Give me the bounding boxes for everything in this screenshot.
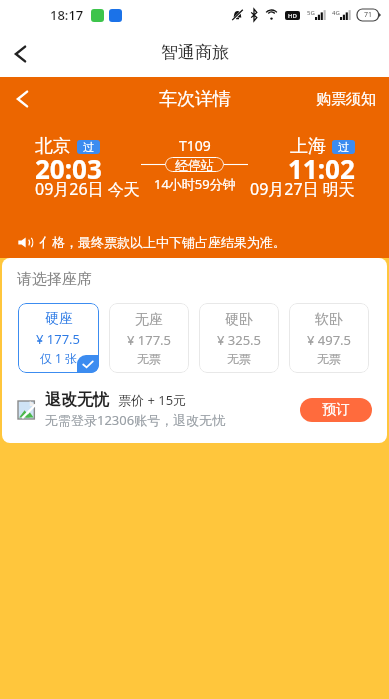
staticText: 请选择座席 [17, 270, 92, 289]
staticText: 18:17 [50, 6, 84, 24]
button[interactable]: 经停站 [165, 157, 224, 172]
staticText: ¥ 325.5 [217, 331, 262, 349]
staticText: 硬卧 [225, 311, 253, 329]
staticText: 退改无忧 [45, 390, 109, 410]
staticText: 无票 [137, 351, 161, 366]
button[interactable]: 软卧 [289, 303, 369, 373]
staticText: HD [288, 12, 297, 20]
button[interactable]: 无座 [109, 303, 189, 373]
button[interactable]: 购票须知 [303, 80, 389, 119]
button[interactable]: Back [0, 77, 44, 121]
staticText: 票价 + 15元 [118, 391, 187, 409]
staticText: 过 [83, 140, 94, 154]
staticText: 4G [332, 9, 340, 17]
staticText: 车次详情 [159, 88, 231, 111]
staticText: ¥ 177.5 [127, 331, 172, 349]
staticText: 无票 [317, 351, 341, 366]
staticText: 经停站 [175, 157, 214, 172]
button[interactable]: 硬卧 [199, 303, 279, 373]
staticText: 09月26日 今天 [35, 178, 140, 200]
staticText: 无需登录12306账号，退改无忧 [45, 411, 226, 429]
staticText: ¥ 497.5 [307, 331, 352, 349]
staticText: 上海 [290, 135, 326, 158]
staticText: 14小时59分钟 [154, 175, 236, 193]
staticText: 仅 1 张 [40, 350, 78, 366]
staticText: 过 [338, 140, 349, 154]
staticText: 北京 [35, 135, 71, 158]
staticText: 智通商旅 [161, 42, 229, 63]
button[interactable]: 预订 [300, 398, 372, 422]
staticText: 20:03 [35, 151, 102, 186]
staticText: 软卧 [315, 311, 343, 329]
button[interactable]: 硬座 [18, 303, 99, 373]
staticText: 11:02 [288, 151, 355, 186]
staticText: 71 [364, 10, 373, 20]
staticText: 硬座 [45, 310, 73, 328]
button[interactable]: Back [0, 30, 40, 77]
staticText: ¥ 177.5 [36, 330, 81, 348]
staticText: T109 [179, 136, 211, 155]
staticText: 无票 [227, 351, 251, 366]
staticText: 亻格，最终票款以上中下铺占座结果为准。 [39, 234, 286, 250]
staticText: 无座 [135, 311, 163, 329]
staticText: 5G [307, 9, 315, 17]
staticText: 预订 [322, 401, 350, 419]
staticText: 09月27日 明天 [250, 178, 355, 200]
